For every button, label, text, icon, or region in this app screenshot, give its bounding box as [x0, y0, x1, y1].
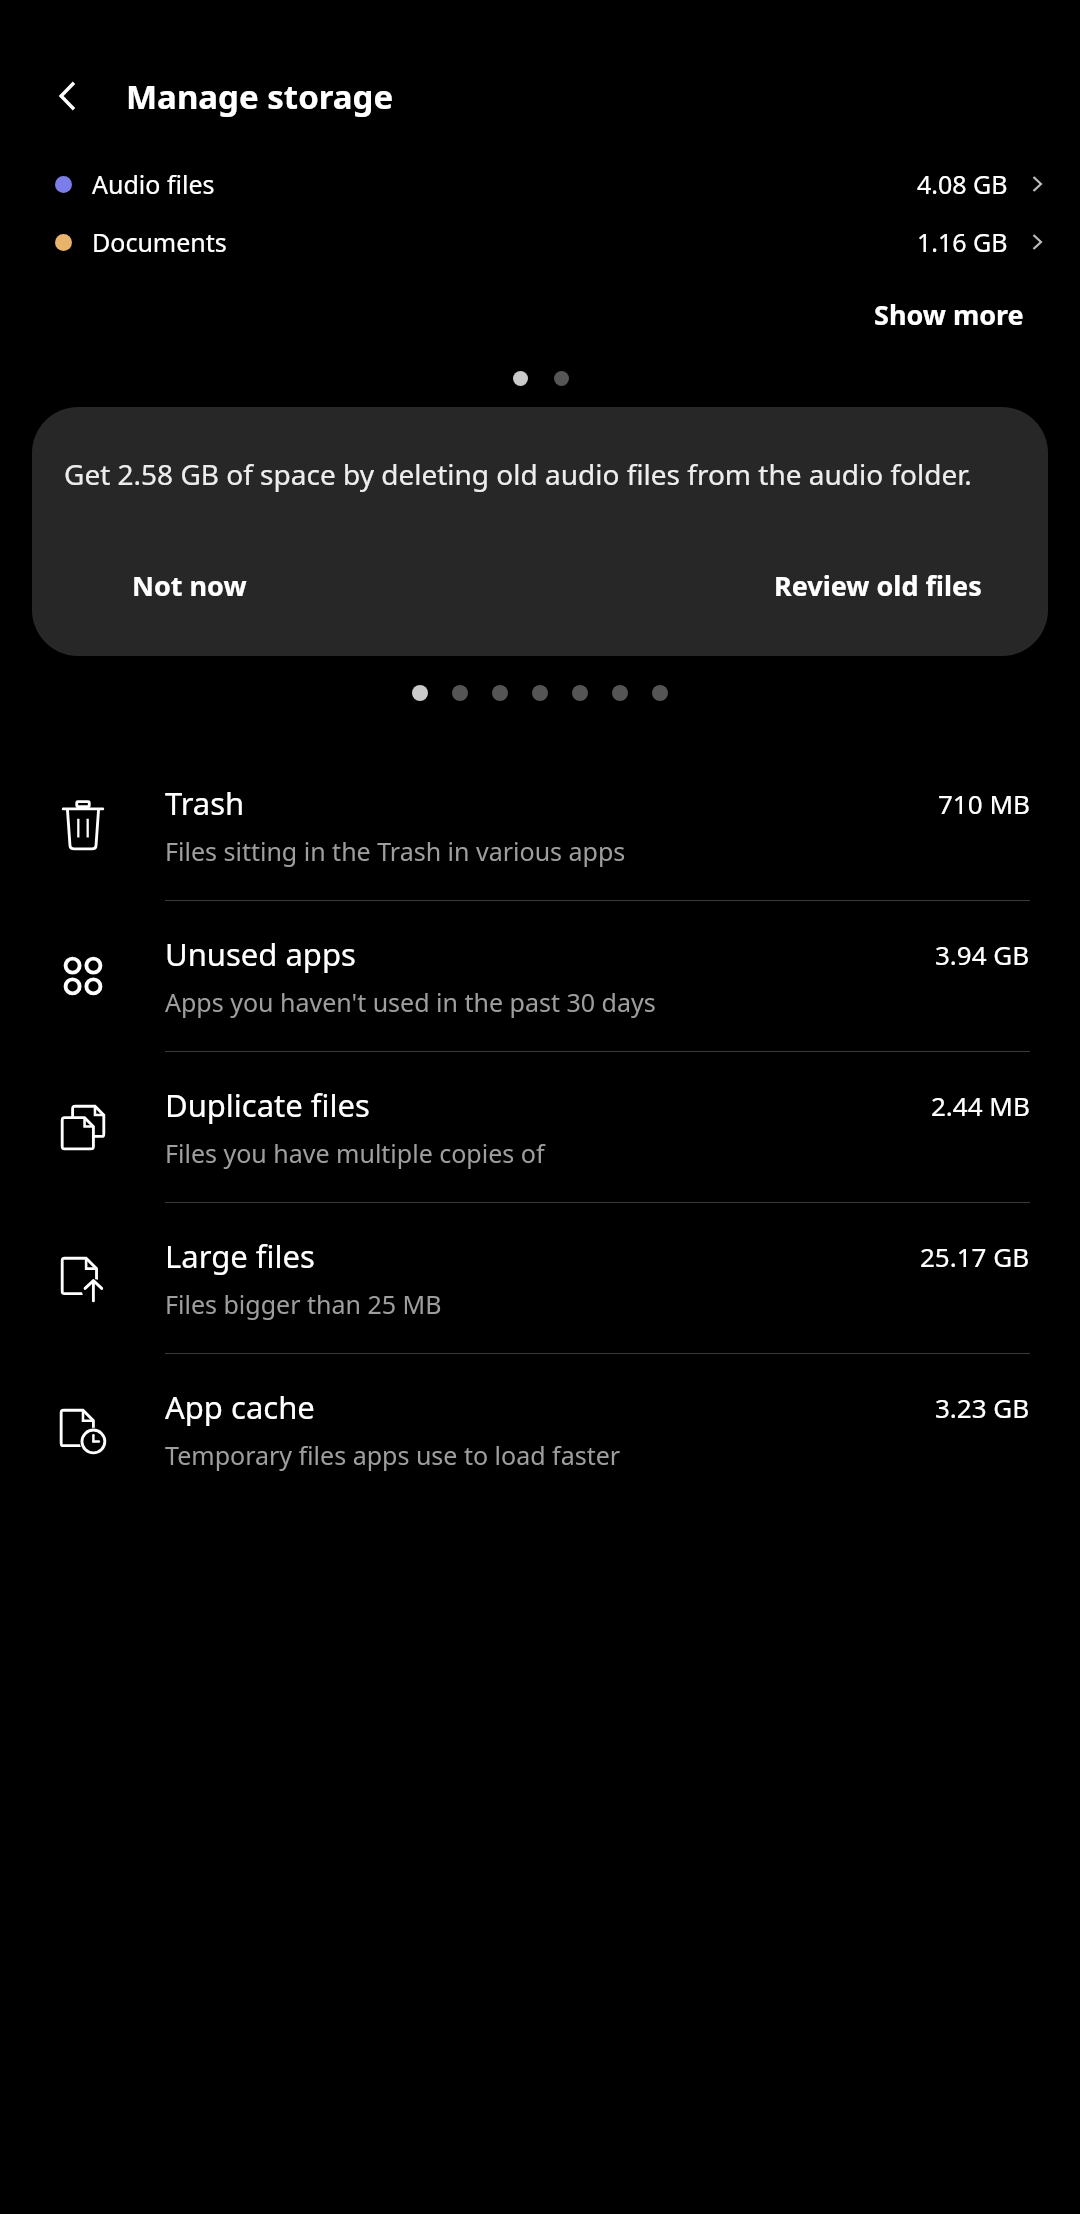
button[interactable]: Duplicate files: [0, 1052, 1080, 1203]
staticText: Review old files: [774, 567, 982, 604]
staticText: 3.94 GB: [935, 937, 1030, 972]
staticText: 2.44 MB: [931, 1088, 1030, 1123]
button[interactable]: Trash: [0, 750, 1080, 901]
button[interactable]: Show more: [858, 286, 1040, 343]
button[interactable]: Documents: [0, 222, 1080, 262]
button[interactable]: Back: [42, 70, 94, 122]
staticText: Apps you haven't used in the past 30 day…: [165, 985, 656, 1019]
staticText: Temporary files apps use to load faster: [165, 1438, 621, 1472]
staticText: Files bigger than 25 MB: [165, 1287, 442, 1321]
staticText: Files sitting in the Trash in various ap…: [165, 834, 626, 868]
staticText: Duplicate files: [165, 1084, 370, 1126]
staticText: Get 2.58 GB of space by deleting old aud…: [64, 455, 972, 493]
button[interactable]: Unused apps: [0, 901, 1080, 1052]
staticText: Large files: [165, 1235, 315, 1277]
staticText: Documents: [92, 225, 227, 259]
button[interactable]: Review old files: [756, 553, 1000, 618]
staticText: 25.17 GB: [920, 1239, 1030, 1274]
staticText: 710 MB: [938, 786, 1030, 821]
staticText: Manage storage: [126, 74, 394, 119]
staticText: Show more: [874, 296, 1024, 333]
staticText: 3.23 GB: [935, 1390, 1030, 1425]
button[interactable]: App cache: [0, 1354, 1080, 1504]
staticText: 1.16 GB: [917, 225, 1008, 259]
staticText: App cache: [165, 1386, 315, 1428]
staticText: Files you have multiple copies of: [165, 1136, 545, 1170]
staticText: Trash: [165, 782, 245, 824]
staticText: Not now: [132, 567, 247, 604]
staticText: Audio files: [92, 167, 215, 201]
button[interactable]: Not now: [114, 553, 265, 618]
staticText: 4.08 GB: [917, 167, 1008, 201]
button[interactable]: Large files: [0, 1203, 1080, 1354]
staticText: Unused apps: [165, 933, 356, 975]
button[interactable]: Audio files: [0, 164, 1080, 204]
